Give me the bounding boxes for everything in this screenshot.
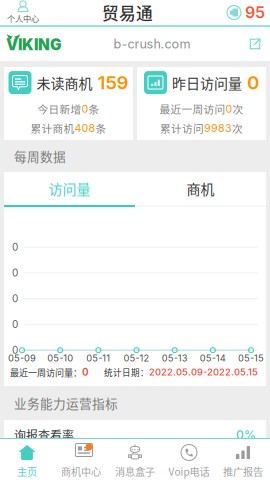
staticText: 商机中心 [61, 464, 101, 479]
staticText: 95 [245, 3, 265, 22]
staticText: 05-10 [47, 353, 73, 364]
staticText: 0 [82, 366, 89, 378]
button[interactable]: 95 [215, 0, 265, 25]
staticText: 统计日期： [104, 366, 149, 378]
staticText: VIKING [6, 35, 62, 54]
button[interactable]: 个人中心 [5, 0, 40, 24]
button[interactable]: 商机中心 [54, 439, 108, 480]
button[interactable]: 商机 [135, 172, 266, 205]
staticText: 每周数据 [14, 147, 66, 165]
staticText: 05-12 [123, 353, 149, 364]
staticText: Voip电话 [168, 464, 209, 479]
button[interactable]: 主页 [0, 439, 54, 480]
button[interactable]: Voip电话 [162, 439, 216, 480]
button[interactable]: 未读商机 [4, 67, 133, 140]
staticText: 0 [12, 293, 18, 305]
staticText: 访问量 [48, 178, 90, 199]
button[interactable]: 消息盒子 [108, 439, 162, 480]
staticText: 05-09 [8, 353, 36, 364]
staticText: 消息盒子 [115, 464, 155, 479]
staticText: 05-13 [162, 353, 188, 364]
staticText: 0% [236, 428, 256, 442]
staticText: 0 [12, 344, 18, 356]
staticText: 次 [232, 101, 243, 116]
staticText: 未读商机 [36, 72, 92, 93]
staticText: 0 [12, 318, 18, 330]
staticText: 条 [88, 101, 99, 116]
staticText: 2022.05.09-2022.05.15 [149, 367, 258, 378]
staticText: 0 [12, 241, 18, 253]
staticText: 05-11 [86, 353, 110, 364]
staticText: b-crush.com [113, 36, 190, 52]
staticText: 商机 [186, 178, 214, 199]
staticText: 昨日访问量 [172, 72, 242, 93]
staticText: 累计商机 [30, 120, 74, 136]
staticText: 0 [81, 102, 88, 115]
button[interactable]: 推广报告 [216, 439, 270, 480]
button[interactable]: 访问量 [4, 172, 135, 205]
staticText: 主页 [17, 464, 37, 479]
staticText: 05-14 [200, 353, 226, 364]
staticText: 今日新增 [37, 101, 81, 116]
staticText: 次 [232, 120, 243, 136]
staticText: 条 [95, 120, 106, 136]
staticText: 贸易通 [102, 0, 153, 24]
staticText: 159 [97, 71, 128, 94]
staticText: 0 [247, 71, 259, 94]
button[interactable]: Open website [240, 29, 270, 59]
staticText: 408 [74, 122, 95, 135]
staticText: 0 [225, 102, 232, 115]
staticText: 累计访问 [160, 120, 204, 136]
staticText: 0 [12, 267, 18, 279]
staticText: 业务能力运营指标 [14, 394, 118, 412]
staticText: 05-15 [238, 353, 264, 364]
staticText: 推广报告 [223, 464, 263, 479]
staticText: 询报查看率 [14, 426, 74, 444]
staticText: 9983 [204, 122, 232, 135]
staticText: 个人中心 [7, 12, 39, 24]
button[interactable]: 昨日访问量 [137, 67, 266, 140]
staticText: 最近一周访问量： [10, 366, 82, 379]
staticText: 最近一周访问 [159, 101, 225, 116]
